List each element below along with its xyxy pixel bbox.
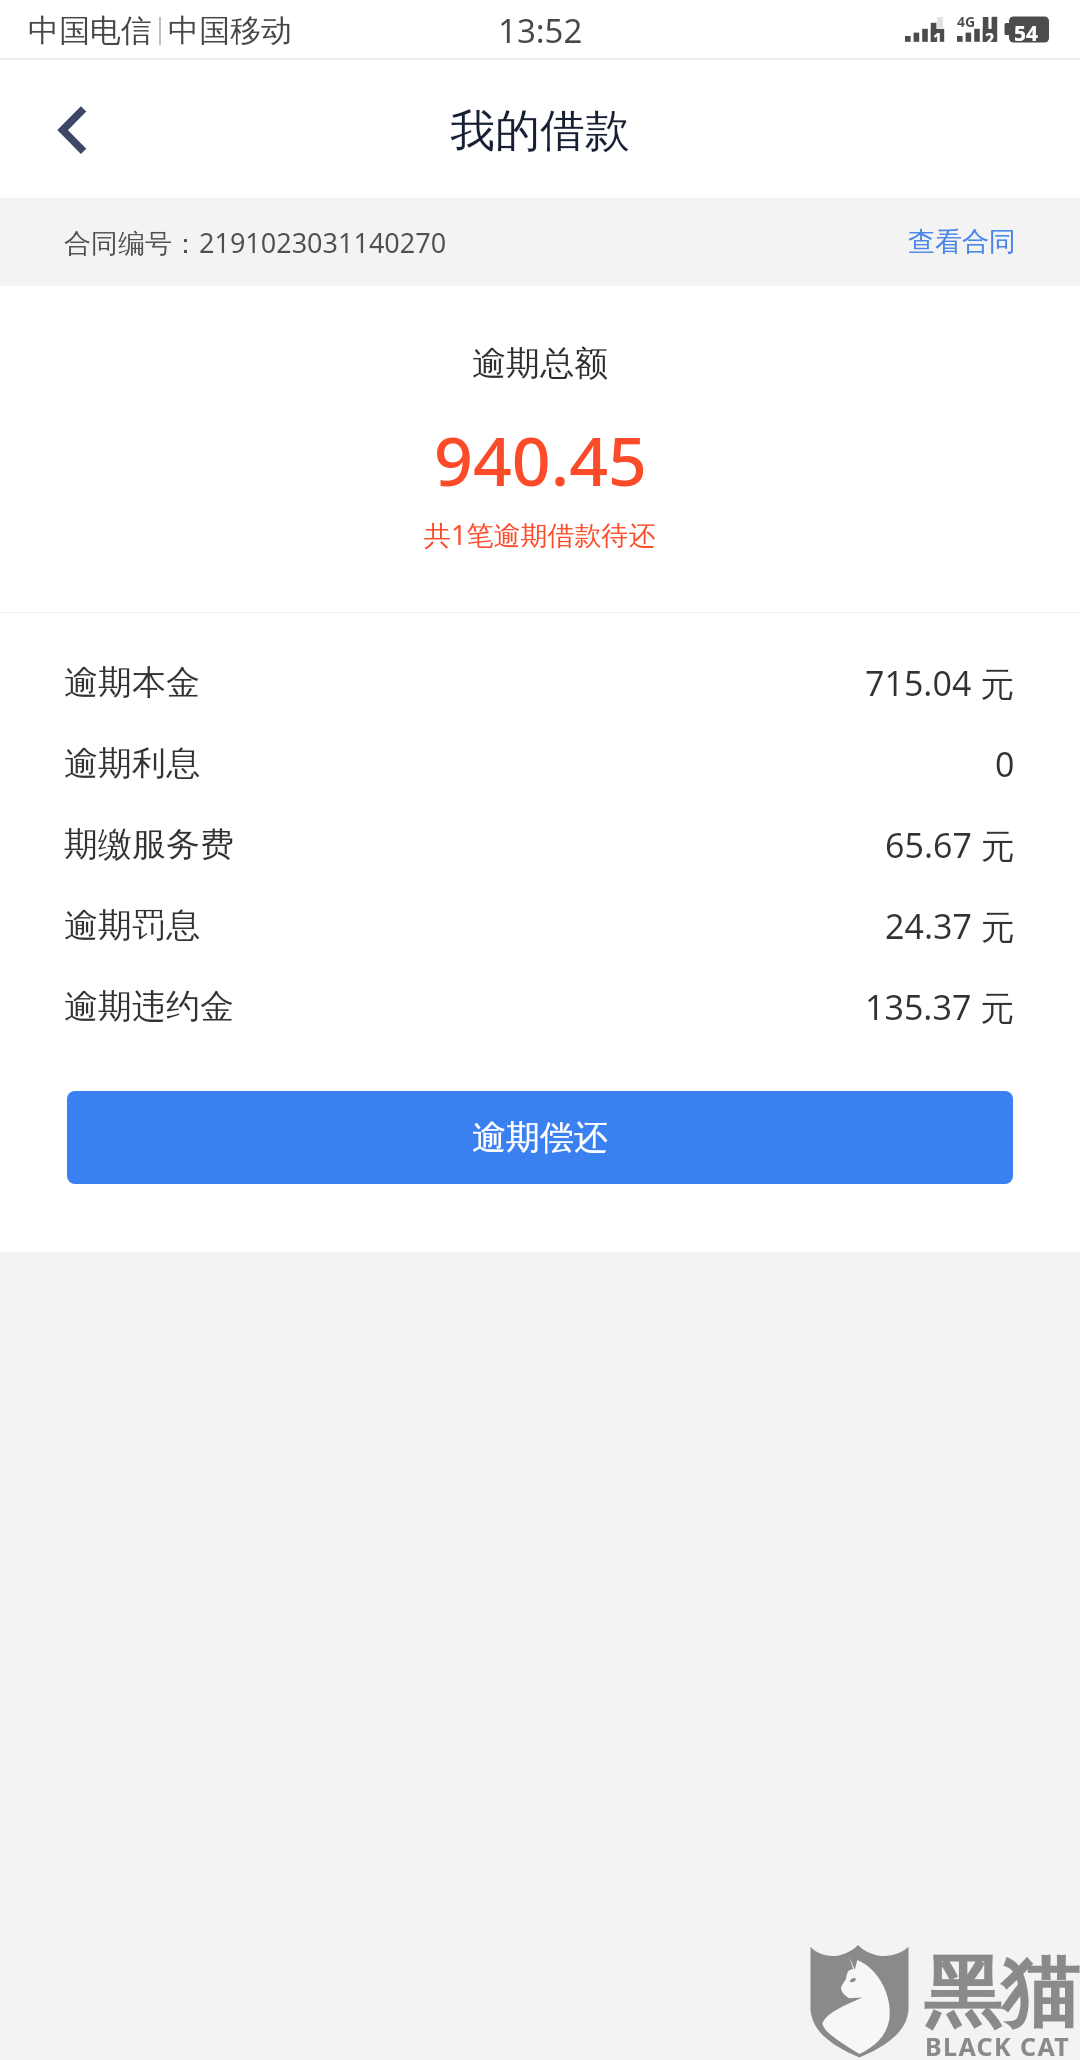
staticText: 24.37 元 bbox=[885, 903, 1015, 949]
staticText: 2 bbox=[985, 28, 995, 50]
staticText: 1 bbox=[933, 28, 943, 50]
staticText: BLACK CAT bbox=[925, 2029, 1071, 2060]
staticText: 合同编号：2191023031140270 bbox=[64, 224, 447, 261]
button[interactable]: 逾期利息 bbox=[0, 723, 1080, 804]
staticText: 期缴服务费 bbox=[64, 823, 234, 866]
staticText: 65.67 元 bbox=[885, 822, 1015, 868]
button[interactable]: 逾期罚息 bbox=[0, 885, 1080, 966]
button[interactable]: 逾期本金 bbox=[0, 642, 1080, 723]
button[interactable]: 查看合同 bbox=[888, 211, 1016, 273]
staticText: 13:52 bbox=[498, 8, 583, 53]
button[interactable]: 期缴服务费 bbox=[0, 804, 1080, 885]
staticText: 逾期利息 bbox=[64, 742, 200, 785]
staticText: 我的借款 bbox=[450, 103, 630, 160]
staticText: 54 bbox=[1014, 19, 1039, 48]
staticText: 135.37 元 bbox=[865, 984, 1015, 1030]
staticText: 逾期违约金 bbox=[64, 985, 234, 1028]
staticText: 黑猫 bbox=[923, 1944, 1079, 2042]
staticText: 共1笔逾期借款待还 bbox=[424, 516, 656, 553]
staticText: 715.04 元 bbox=[865, 660, 1015, 706]
staticText: 查看合同 bbox=[908, 225, 1016, 259]
staticText: 中国移动 bbox=[168, 11, 292, 50]
staticText: 0 bbox=[995, 741, 1015, 787]
staticText: 940.45 bbox=[434, 413, 647, 506]
button[interactable]: 返回 bbox=[36, 94, 110, 168]
staticText: 逾期本金 bbox=[64, 661, 200, 704]
staticText: 逾期总额 bbox=[472, 342, 608, 385]
button[interactable]: 逾期偿还 bbox=[67, 1091, 1013, 1184]
staticText: 逾期偿还 bbox=[472, 1116, 608, 1159]
staticText: 4G bbox=[957, 12, 976, 31]
button[interactable]: 逾期违约金 bbox=[0, 966, 1080, 1047]
staticText: 逾期罚息 bbox=[64, 904, 200, 947]
staticText: 中国电信 bbox=[28, 11, 152, 50]
